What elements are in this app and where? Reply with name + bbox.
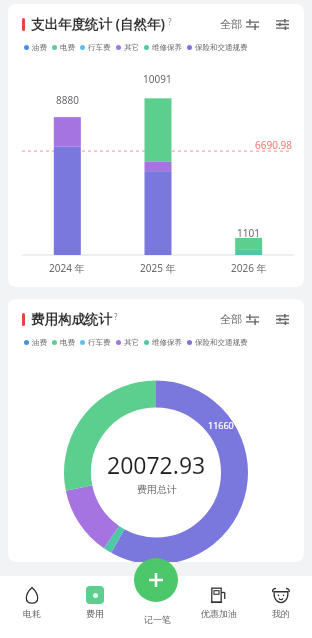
staticText: 记一笔: [144, 614, 171, 625]
button[interactable]: 筛选: [273, 310, 292, 329]
staticText: 我的: [272, 608, 290, 619]
staticText: 11660: [208, 419, 234, 431]
button[interactable]: 全部: [218, 309, 261, 329]
staticText: 维修保养: [152, 43, 182, 52]
staticText: 20072.93: [107, 449, 206, 480]
button[interactable]: 筛选: [273, 15, 292, 34]
staticText: 其它: [124, 43, 139, 52]
staticText: ?: [168, 16, 172, 27]
staticText: 优惠加油: [201, 608, 237, 619]
staticText: 维修保养: [152, 338, 182, 347]
button[interactable]: 全部: [218, 14, 261, 34]
staticText: 其它: [124, 338, 139, 347]
staticText: 2026 年: [231, 261, 267, 275]
staticText: 费用: [86, 608, 104, 619]
staticText: 全部: [220, 17, 242, 31]
staticText: 支出年度统计 (自然年): [31, 15, 166, 33]
staticText: 保险和交通规费: [195, 338, 248, 347]
staticText: 行车费: [88, 338, 111, 347]
button[interactable]: 电耗: [0, 582, 63, 638]
button[interactable]: 费用: [63, 582, 126, 638]
staticText: 费用构成统计: [31, 311, 112, 328]
staticText: 2025 年: [140, 261, 176, 275]
staticText: 油费: [32, 43, 47, 52]
staticText: 8880: [56, 93, 79, 107]
button[interactable]: 记一笔: [134, 558, 178, 602]
staticText: 费用总计: [137, 483, 177, 496]
button[interactable]: 我的: [250, 582, 312, 638]
button[interactable]: 优惠加油: [188, 582, 250, 638]
staticText: 全部: [220, 312, 242, 326]
staticText: 10091: [143, 72, 172, 86]
staticText: 电费: [60, 338, 75, 347]
staticText: 电费: [60, 43, 75, 52]
staticText: 2024 年: [49, 261, 85, 275]
staticText: 6690.98: [255, 138, 292, 152]
staticText: 油费: [32, 338, 47, 347]
staticText: ?: [114, 311, 118, 322]
staticText: 电耗: [23, 608, 41, 619]
staticText: 保险和交通规费: [195, 43, 248, 52]
staticText: 1101: [237, 226, 260, 240]
staticText: 行车费: [88, 43, 111, 52]
